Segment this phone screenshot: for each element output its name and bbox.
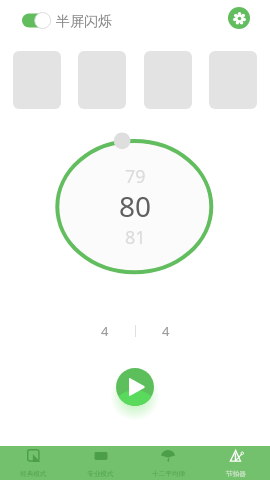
button[interactable]: 节拍器: [202, 446, 270, 480]
button[interactable]: 79: [50, 130, 220, 285]
staticText: 半屏闪烁: [56, 13, 112, 31]
staticText: 79: [125, 164, 146, 189]
staticText: 专业模式: [87, 470, 114, 478]
button[interactable]: 专业模式: [67, 446, 134, 480]
button[interactable]: 半屏闪烁: [22, 13, 112, 31]
staticText: 80: [119, 187, 152, 219]
staticText: 十二平均律: [152, 470, 185, 478]
button[interactable]: 4: [148, 322, 184, 340]
button[interactable]: 经典模式: [0, 446, 67, 480]
staticText: 81: [125, 225, 146, 250]
staticText: 节拍器: [226, 470, 246, 478]
staticText: 4: [162, 322, 170, 340]
button[interactable]: 十二平均律: [134, 446, 202, 480]
button[interactable]: Play: [110, 362, 160, 412]
staticText: 4: [101, 322, 109, 340]
staticText: 经典模式: [20, 470, 47, 478]
button[interactable]: 4: [87, 322, 123, 340]
button[interactable]: Settings: [228, 7, 250, 29]
